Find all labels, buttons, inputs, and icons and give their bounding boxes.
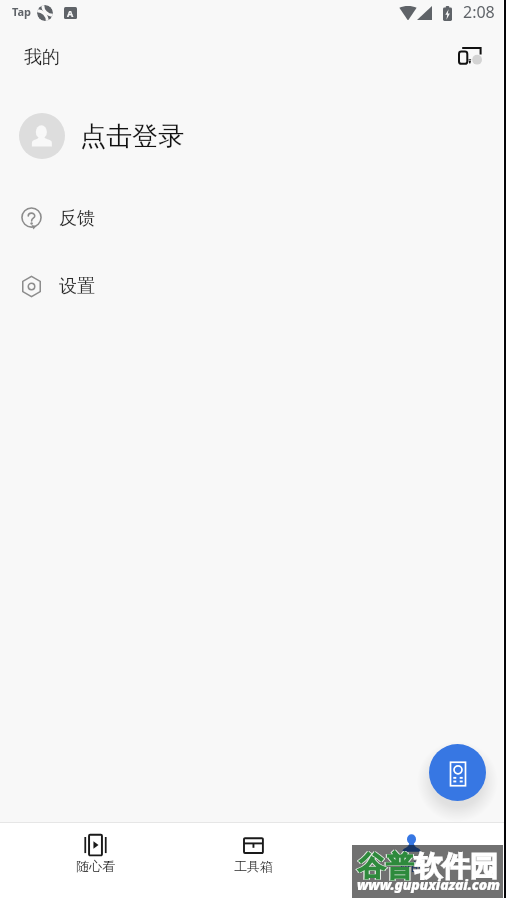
staticText: 我的: [24, 46, 60, 69]
button[interactable]: 我的: [332, 823, 490, 898]
button[interactable]: Remote control: [429, 744, 486, 801]
staticText: Tap: [12, 4, 32, 19]
staticText: www.gupuxiazai.com: [357, 875, 500, 894]
staticText: 随心看: [76, 858, 115, 874]
button[interactable]: Cast to device: [446, 33, 494, 77]
button[interactable]: 设置: [0, 252, 503, 320]
staticText: 谷普: [357, 849, 414, 884]
button[interactable]: 随心看: [16, 823, 174, 898]
staticText: 点击登录: [80, 120, 184, 153]
staticText: 工具箱: [234, 858, 273, 874]
button[interactable]: 反馈: [0, 184, 503, 252]
staticText: 2:08: [463, 1, 495, 23]
button[interactable]: 点击登录: [0, 88, 503, 184]
staticText: 软件园: [414, 849, 498, 884]
staticText: 谷普: [358, 849, 415, 884]
staticText: 反馈: [59, 207, 95, 230]
staticText: 我的: [398, 858, 424, 874]
staticText: 设置: [59, 275, 95, 298]
staticText: 谷普: [356, 849, 413, 884]
staticText: A: [67, 7, 74, 19]
button[interactable]: 工具箱: [174, 823, 332, 898]
